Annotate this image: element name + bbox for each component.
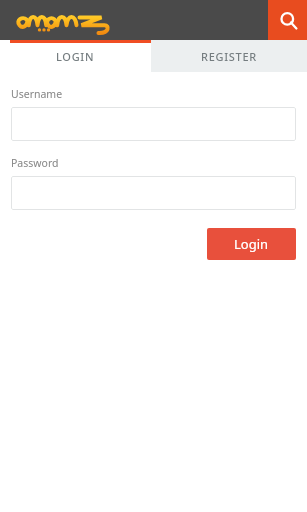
button[interactable]: Login [207,228,296,260]
button[interactable]: LOGIN [0,40,151,72]
button[interactable]: Search [268,0,307,40]
staticText: REGISTER [201,49,257,64]
staticText: Password [11,156,59,170]
staticText: Login [234,235,269,253]
staticText: Username [11,87,63,101]
button[interactable]: Text field [11,176,296,210]
staticText: LOGIN [56,49,95,64]
button[interactable]: REGISTER [151,40,307,72]
button[interactable]: Text field [11,107,296,141]
